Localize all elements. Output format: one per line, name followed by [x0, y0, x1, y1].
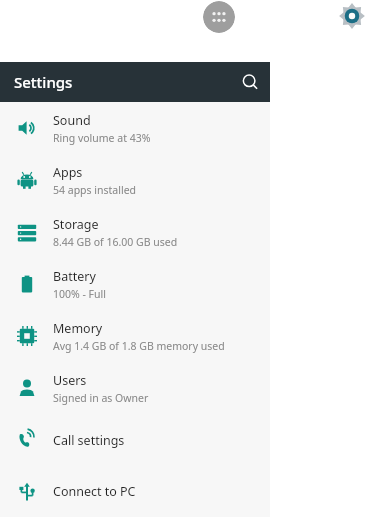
- button[interactable]: Settings: [0, 62, 270, 102]
- button[interactable]: Apps: [0, 154, 270, 206]
- button[interactable]: Connect to PC: [0, 466, 270, 517]
- button[interactable]: Battery: [0, 258, 270, 310]
- staticText: Battery: [53, 268, 96, 285]
- staticText: Call settings: [53, 432, 125, 449]
- staticText: Memory: [53, 320, 103, 337]
- button[interactable]: Storage: [0, 206, 270, 258]
- button[interactable]: Apps: [203, 1, 235, 33]
- button[interactable]: Memory: [0, 310, 270, 362]
- staticText: Apps: [53, 164, 83, 181]
- staticText: Signed in as Owner: [53, 391, 149, 405]
- button[interactable]: Search: [230, 62, 270, 102]
- staticText: Storage: [53, 216, 99, 233]
- button[interactable]: Users: [0, 362, 270, 414]
- staticText: Users: [53, 372, 87, 389]
- staticText: Settings: [14, 72, 73, 92]
- staticText: Avg 1.4 GB of 1.8 GB memory used: [53, 339, 225, 353]
- staticText: Connect to PC: [53, 483, 136, 500]
- staticText: 54 apps installed: [53, 183, 137, 197]
- staticText: 100% - Full: [53, 287, 106, 301]
- staticText: Sound: [53, 112, 91, 129]
- button[interactable]: Settings: [338, 2, 366, 30]
- button[interactable]: Sound: [0, 102, 270, 154]
- button[interactable]: Call settings: [0, 414, 270, 466]
- staticText: 8.44 GB of 16.00 GB used: [53, 235, 178, 249]
- staticText: Ring volume at 43%: [53, 131, 151, 145]
